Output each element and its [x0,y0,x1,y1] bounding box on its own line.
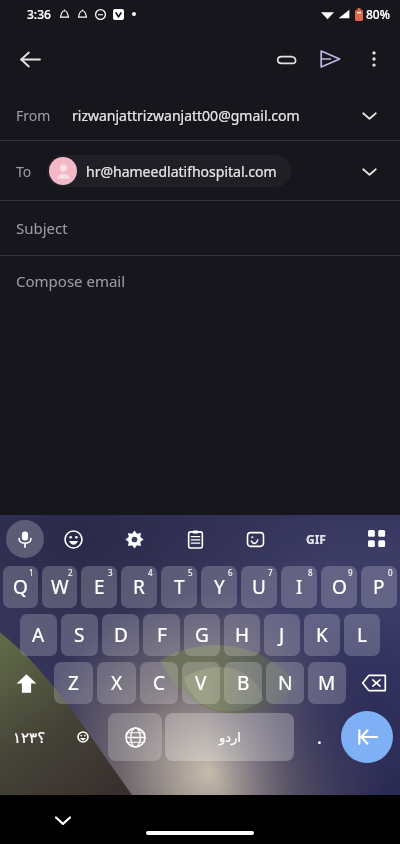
button[interactable]: GIF [301,524,331,554]
staticText: 0 [388,567,393,578]
staticText: F [157,622,167,648]
button[interactable]: H [224,614,260,656]
button[interactable]: F [143,614,180,656]
button[interactable]: D [102,614,139,656]
button[interactable]: L [344,614,380,656]
button[interactable]: Change language [108,713,162,761]
button[interactable]: I [281,566,317,608]
staticText: P [373,574,385,600]
button[interactable]: Stickers [240,524,270,554]
button[interactable]: Voice input [6,520,44,558]
staticText: B [237,670,250,696]
staticText: 80% [366,6,390,22]
button[interactable]: W [42,566,77,608]
button[interactable]: Z [54,662,93,704]
button[interactable]: Settings [119,524,149,554]
staticText: X [111,670,123,696]
button[interactable]: More options [352,37,396,81]
button[interactable]: Hide keyboard [50,807,76,833]
staticText: D [114,622,128,648]
staticText: 3:36 [27,6,51,22]
button[interactable]: Back [8,37,52,81]
button[interactable]: Y [201,566,237,608]
button[interactable]: P [361,566,397,608]
button[interactable]: B [224,662,262,704]
staticText: Compose email [16,271,126,291]
staticText: G [195,622,209,648]
button[interactable]: O [321,566,357,608]
button[interactable]: V [182,662,220,704]
button[interactable]: From [0,90,400,140]
staticText: 2 [68,567,73,578]
staticText: J [279,622,285,648]
button[interactable]: K [304,614,340,656]
button[interactable]: E [81,566,117,608]
staticText: R [133,574,145,600]
staticText: 5 [188,567,193,578]
button[interactable]: Q [3,566,38,608]
button[interactable]: Clipboard [180,524,210,554]
staticText: ؟١٢٣ [13,729,46,746]
staticText: O [332,574,347,600]
staticText: 7 [268,567,273,578]
staticText: K [316,622,328,648]
button[interactable]: C [140,662,178,704]
button[interactable]: Compose email [0,256,400,306]
button[interactable]: G [184,614,220,656]
staticText: E [94,574,105,600]
button[interactable]: R [121,566,157,608]
staticText: 3 [108,567,113,578]
staticText: From [16,106,51,125]
button[interactable]: Emoji [58,711,108,763]
staticText: 4 [148,567,153,578]
button[interactable]: Backspace [348,662,400,704]
staticText: Z [68,670,79,696]
staticText: GIF [306,531,326,547]
staticText: Subject [16,218,68,238]
staticText: rizwanjattrizwanjatt00@gmail.com [72,106,300,125]
staticText: T [174,574,185,600]
button[interactable]: Emoji [58,524,88,554]
button[interactable]: U [241,566,277,608]
staticText: L [357,622,367,648]
button[interactable]: اردو [165,713,294,761]
staticText: 9 [348,567,353,578]
staticText: N [278,670,293,696]
button[interactable]: To [0,141,400,200]
staticText: 8 [308,567,313,578]
button[interactable]: Subject [0,201,400,255]
staticText: 1 [29,567,34,578]
staticText: Y [214,574,225,600]
button[interactable]: . [297,711,341,763]
button[interactable]: Enter [341,711,393,763]
button[interactable]: T [161,566,197,608]
staticText: U [252,574,266,600]
button[interactable]: Expand recipients [352,98,386,132]
staticText: C [153,670,166,696]
button[interactable]: Shift [0,662,52,704]
staticText: To [16,162,32,181]
staticText: V [195,670,207,696]
button[interactable]: X [97,662,136,704]
staticText: M [318,670,336,696]
staticText: S [74,622,85,648]
button[interactable]: J [264,614,300,656]
button[interactable]: A [20,614,57,656]
staticText: A [32,622,45,648]
button[interactable]: More tools [362,524,392,554]
button[interactable]: S [61,614,98,656]
button[interactable]: ؟١٢٣ [0,711,58,763]
staticText: H [235,622,250,648]
staticText: . [317,725,322,750]
button[interactable]: M [308,662,346,704]
staticText: W [51,574,69,600]
button[interactable]: Attach file [264,37,308,81]
staticText: اردو [219,730,241,745]
staticText: I [296,574,303,600]
button[interactable]: N [266,662,304,704]
staticText: Q [13,574,28,600]
staticText: 6 [228,567,233,578]
button[interactable]: Expand recipients [352,154,386,188]
button[interactable]: Send [308,37,352,81]
staticText: hr@hameedlatifhospital.com [86,162,277,181]
